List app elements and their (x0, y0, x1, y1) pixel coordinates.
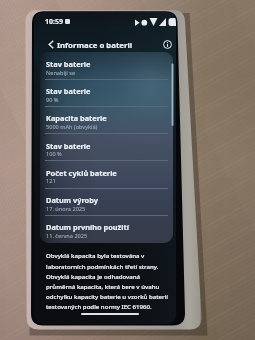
button[interactable]: Zpět (44, 37, 59, 52)
staticText: Stav baterie (46, 59, 91, 69)
button[interactable] (40, 134, 173, 161)
staticText: Datum výroby (46, 195, 98, 205)
staticText: 10:59 (45, 17, 63, 27)
button[interactable] (40, 188, 173, 215)
staticText: 90 % (46, 96, 59, 104)
staticText: Počet cyklů baterie (46, 168, 117, 178)
staticText: Stav baterie (46, 141, 91, 151)
staticText: laboratorních podmínkách třetí strany. (46, 262, 159, 270)
staticText: Kapacita baterie (46, 113, 107, 123)
button[interactable] (40, 215, 173, 242)
staticText: Informace o baterii (57, 40, 133, 51)
staticText: odchylku kapacity baterie u vzorků bater… (46, 292, 168, 300)
staticText: Stav baterie (46, 86, 91, 96)
staticText: 5000 mAh (obvyklá) (46, 123, 98, 131)
staticText: 100 % (46, 150, 62, 158)
button[interactable] (40, 106, 173, 133)
button[interactable] (40, 79, 173, 106)
staticText: 17. února 2025 (46, 205, 86, 213)
staticText: Obvyklá kapacita je odhadovaná (46, 272, 141, 280)
staticText: testovaných podle normy IEC 61960. (46, 302, 152, 310)
staticText: 121 (46, 177, 56, 185)
button[interactable] (40, 52, 173, 79)
staticText: průměrná kapacita, která bere v úvahu (46, 282, 160, 290)
staticText: Nenabíjí se (46, 69, 76, 77)
button[interactable] (40, 161, 173, 188)
button[interactable]: Informace (160, 37, 174, 51)
staticText: 11. června 2025 (46, 232, 88, 240)
staticText: Obvyklá kapacita byla testována v (46, 251, 145, 259)
staticText: Datum prvního použití (46, 222, 129, 232)
